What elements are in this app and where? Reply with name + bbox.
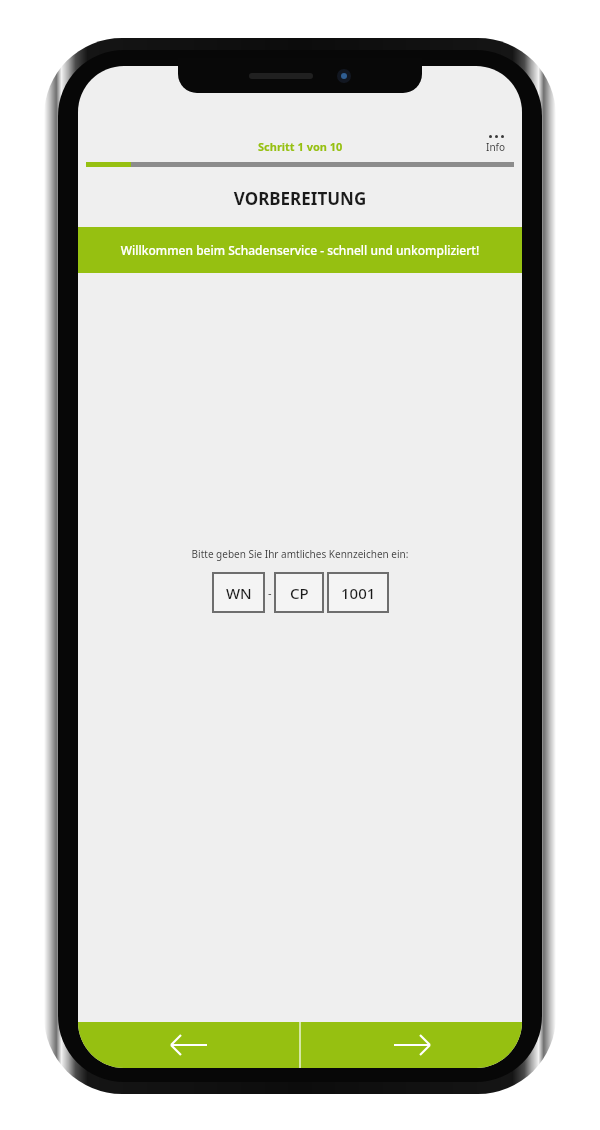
staticText: Bitte geben Sie Ihr amtliches Kennzeiche… — [78, 547, 522, 561]
button[interactable]: CP — [274, 572, 324, 613]
staticText: VORBEREITUNG — [78, 187, 522, 210]
staticText: 1001 — [341, 583, 376, 603]
staticText: WN — [226, 583, 252, 603]
staticText: Willkommen beim Schadenservice - schnell… — [78, 242, 522, 258]
button[interactable]: Info — [480, 133, 512, 156]
button[interactable]: Zurück — [78, 1022, 299, 1068]
staticText: CP — [290, 583, 309, 603]
staticText: Info — [486, 140, 506, 154]
button[interactable]: WN — [212, 572, 265, 613]
staticText: Schritt 1 von 10 — [258, 139, 343, 154]
button[interactable]: 1001 — [327, 572, 389, 613]
staticText: - — [268, 585, 272, 600]
button[interactable]: Weiter — [301, 1022, 522, 1068]
